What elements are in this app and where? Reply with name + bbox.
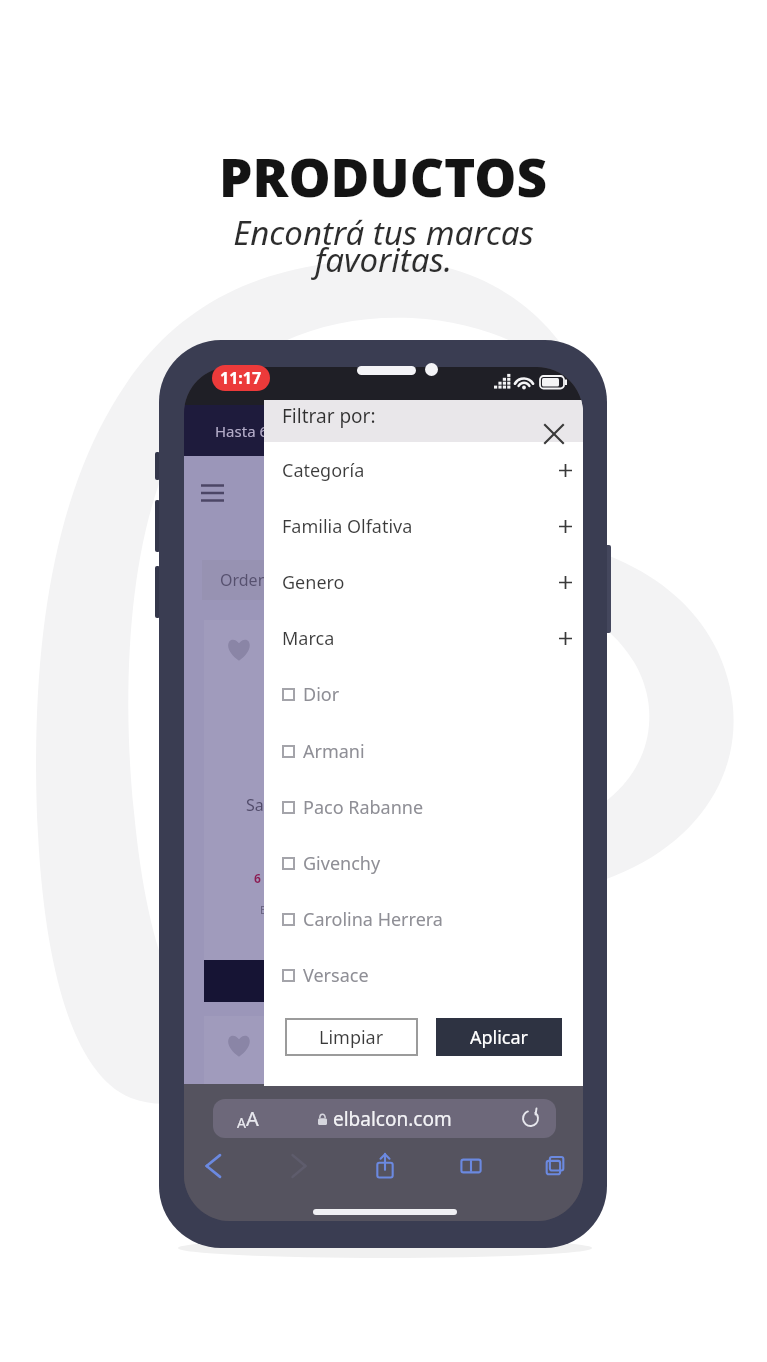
- staticText: A: [237, 1113, 246, 1132]
- button[interactable]: Armani: [264, 728, 583, 774]
- staticText: Genero: [282, 570, 345, 595]
- button[interactable]: Compartir: [363, 1144, 407, 1188]
- staticText: Familia Olfativa: [282, 514, 413, 539]
- staticText: A: [246, 1105, 259, 1132]
- staticText: 6 cuotas de: [254, 870, 322, 886]
- staticText: Versace: [303, 963, 369, 988]
- staticText: PRODUCTOS: [219, 140, 548, 212]
- button[interactable]: Cerrar: [538, 418, 570, 450]
- button[interactable]: Paco Rabanne: [264, 784, 583, 830]
- staticText: Ordenar por: [220, 569, 314, 591]
- button[interactable]: elbalcon.com: [213, 1099, 556, 1138]
- staticText: Limpiar: [319, 1025, 384, 1050]
- button[interactable]: Recargar: [516, 1104, 545, 1133]
- staticText: Carolina Herrera: [303, 907, 443, 932]
- button[interactable]: Categoría: [264, 447, 583, 493]
- staticText: Encontrá tus marcas favoritas.: [233, 210, 534, 282]
- button[interactable]: Tamaño de texto: [224, 1102, 272, 1134]
- button[interactable]: Marcadores: [449, 1144, 493, 1188]
- staticText: 11:17: [220, 367, 262, 389]
- button[interactable]: Atrás: [191, 1144, 235, 1188]
- staticText: Dior: [303, 682, 340, 707]
- button[interactable]: Carolina Herrera: [264, 896, 583, 942]
- staticText: Hasta 6 cuotas sin interés: [215, 421, 396, 441]
- staticText: COMPRAR: [268, 971, 340, 991]
- button[interactable]: Limpiar: [285, 1018, 418, 1056]
- staticText: Filtrar por:: [282, 403, 376, 429]
- button[interactable]: Familia Olfativa: [264, 503, 583, 549]
- button[interactable]: Versace: [264, 952, 583, 998]
- button[interactable]: Aplicar: [436, 1018, 562, 1056]
- staticText: Sauvage: [246, 794, 310, 816]
- button[interactable]: Givenchy: [264, 840, 583, 886]
- staticText: Marca: [282, 626, 335, 651]
- staticText: Givenchy: [303, 851, 381, 876]
- staticText: Envío gratis: [260, 902, 321, 917]
- button[interactable]: Marca: [264, 615, 583, 661]
- staticText: elbalcon.com: [333, 1106, 452, 1132]
- staticText: Armani: [303, 739, 365, 764]
- staticText: Categoría: [282, 458, 365, 483]
- staticText: Aplicar: [470, 1025, 529, 1050]
- button[interactable]: Pestañas: [533, 1144, 577, 1188]
- button[interactable]: Dior: [264, 671, 583, 717]
- staticText: Paco Rabanne: [303, 795, 424, 820]
- button[interactable]: Genero: [264, 559, 583, 605]
